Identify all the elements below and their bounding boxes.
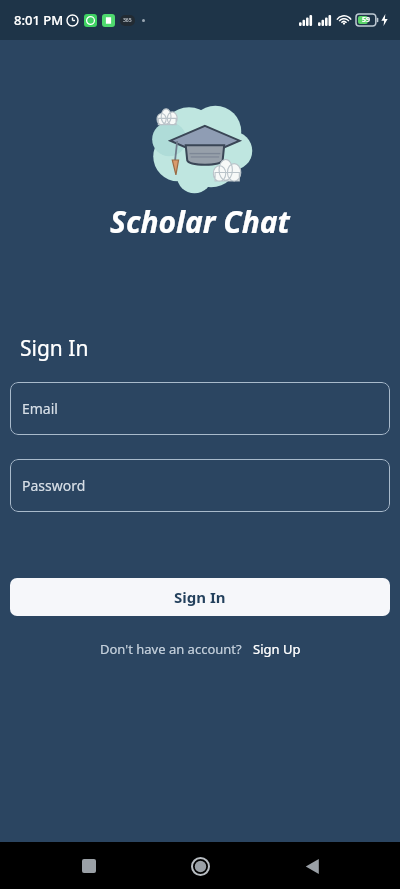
staticText: Don't have an account? xyxy=(100,640,242,658)
staticText: 8:01 PM xyxy=(14,11,64,29)
button[interactable]: Recent apps xyxy=(66,843,112,889)
button[interactable]: Home xyxy=(177,843,223,889)
staticText: Password xyxy=(22,476,86,495)
staticText: Sign In xyxy=(20,334,89,363)
staticText: Sign Up xyxy=(253,640,301,658)
button[interactable]: Sign Up xyxy=(253,640,301,658)
button[interactable]: Password xyxy=(10,459,390,512)
button[interactable]: Sign In xyxy=(10,578,390,616)
staticText: Scholar Chat xyxy=(110,201,290,242)
staticText: Email xyxy=(22,399,58,418)
button[interactable]: Email xyxy=(10,382,390,435)
staticText: 365 xyxy=(123,17,132,24)
staticText: Sign In xyxy=(174,587,226,607)
button[interactable]: Back xyxy=(289,843,335,889)
staticText: 59 xyxy=(362,15,371,25)
